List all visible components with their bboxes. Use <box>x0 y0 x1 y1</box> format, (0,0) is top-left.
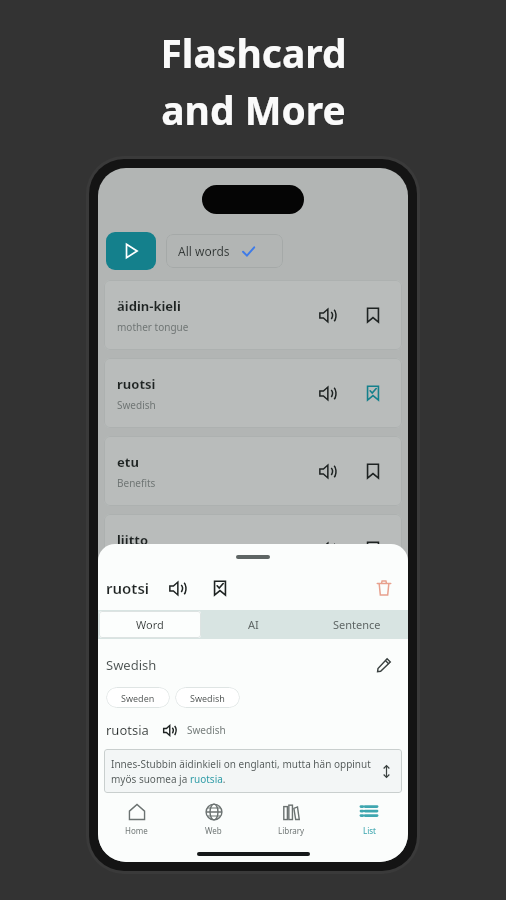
button[interactable]: All words <box>166 234 283 268</box>
button[interactable]: Delete <box>370 574 398 602</box>
button[interactable]: Speak <box>311 299 343 331</box>
button[interactable]: Bookmark <box>357 299 389 331</box>
button[interactable]: Speak <box>311 377 343 409</box>
staticText: ruotsia <box>106 721 149 739</box>
button[interactable]: Speak <box>311 455 343 487</box>
button[interactable]: Library <box>252 793 330 845</box>
staticText: mother tongue <box>117 320 189 334</box>
button[interactable]: Sweden <box>106 687 170 708</box>
staticText: Swedish <box>106 656 157 674</box>
button[interactable]: List <box>330 793 408 845</box>
button[interactable]: etu <box>104 436 402 506</box>
button[interactable]: Edit <box>372 653 396 677</box>
button[interactable]: Bookmark <box>357 533 389 565</box>
other: Resize <box>377 762 395 780</box>
button[interactable]: Sentence <box>305 610 408 639</box>
button[interactable]: Home <box>98 793 175 845</box>
button[interactable]: Speak word <box>159 720 179 740</box>
staticText: Benefits <box>117 476 156 490</box>
button[interactable]: Bookmark <box>207 575 233 601</box>
staticText: Innes-Stubbin äidinkieli on englanti, mu… <box>111 757 377 786</box>
button[interactable]: AI <box>202 610 305 639</box>
staticText: ruotsi <box>106 578 150 598</box>
button[interactable]: Speak <box>164 575 190 601</box>
staticText: Sweden <box>121 692 155 704</box>
button[interactable]: Speak <box>311 533 343 565</box>
button[interactable]: Web <box>175 793 252 845</box>
staticText: Word <box>136 617 164 632</box>
button[interactable]: Bookmark <box>357 377 389 409</box>
staticText: äidin-kieli <box>117 297 181 315</box>
button[interactable]: Swedish <box>175 687 240 708</box>
staticText: liitto <box>117 531 149 549</box>
button[interactable]: Innes-Stubbin äidinkieli on englanti, mu… <box>104 749 402 793</box>
button[interactable]: äidin-kieli <box>104 280 402 350</box>
staticText: etu <box>117 453 139 471</box>
button[interactable]: liitto <box>104 514 402 584</box>
staticText: All words <box>178 243 230 259</box>
button[interactable]: ruotsi <box>104 358 402 428</box>
button[interactable]: Word <box>99 611 201 638</box>
staticText: ruotsi <box>117 375 156 393</box>
button[interactable]: Bookmark <box>357 455 389 487</box>
staticText: and More <box>161 83 346 136</box>
staticText: List <box>363 825 376 836</box>
staticText: Flashcard <box>160 26 347 79</box>
button[interactable]: Play <box>106 232 156 270</box>
staticText: Home <box>125 825 148 836</box>
staticText: Library <box>278 825 305 836</box>
staticText: Swedish <box>190 692 225 704</box>
staticText: Swedish <box>187 723 226 737</box>
staticText: AI <box>248 617 259 632</box>
staticText: Web <box>205 825 222 836</box>
staticText: Swedish <box>117 398 156 412</box>
staticText: Sentence <box>333 617 381 632</box>
